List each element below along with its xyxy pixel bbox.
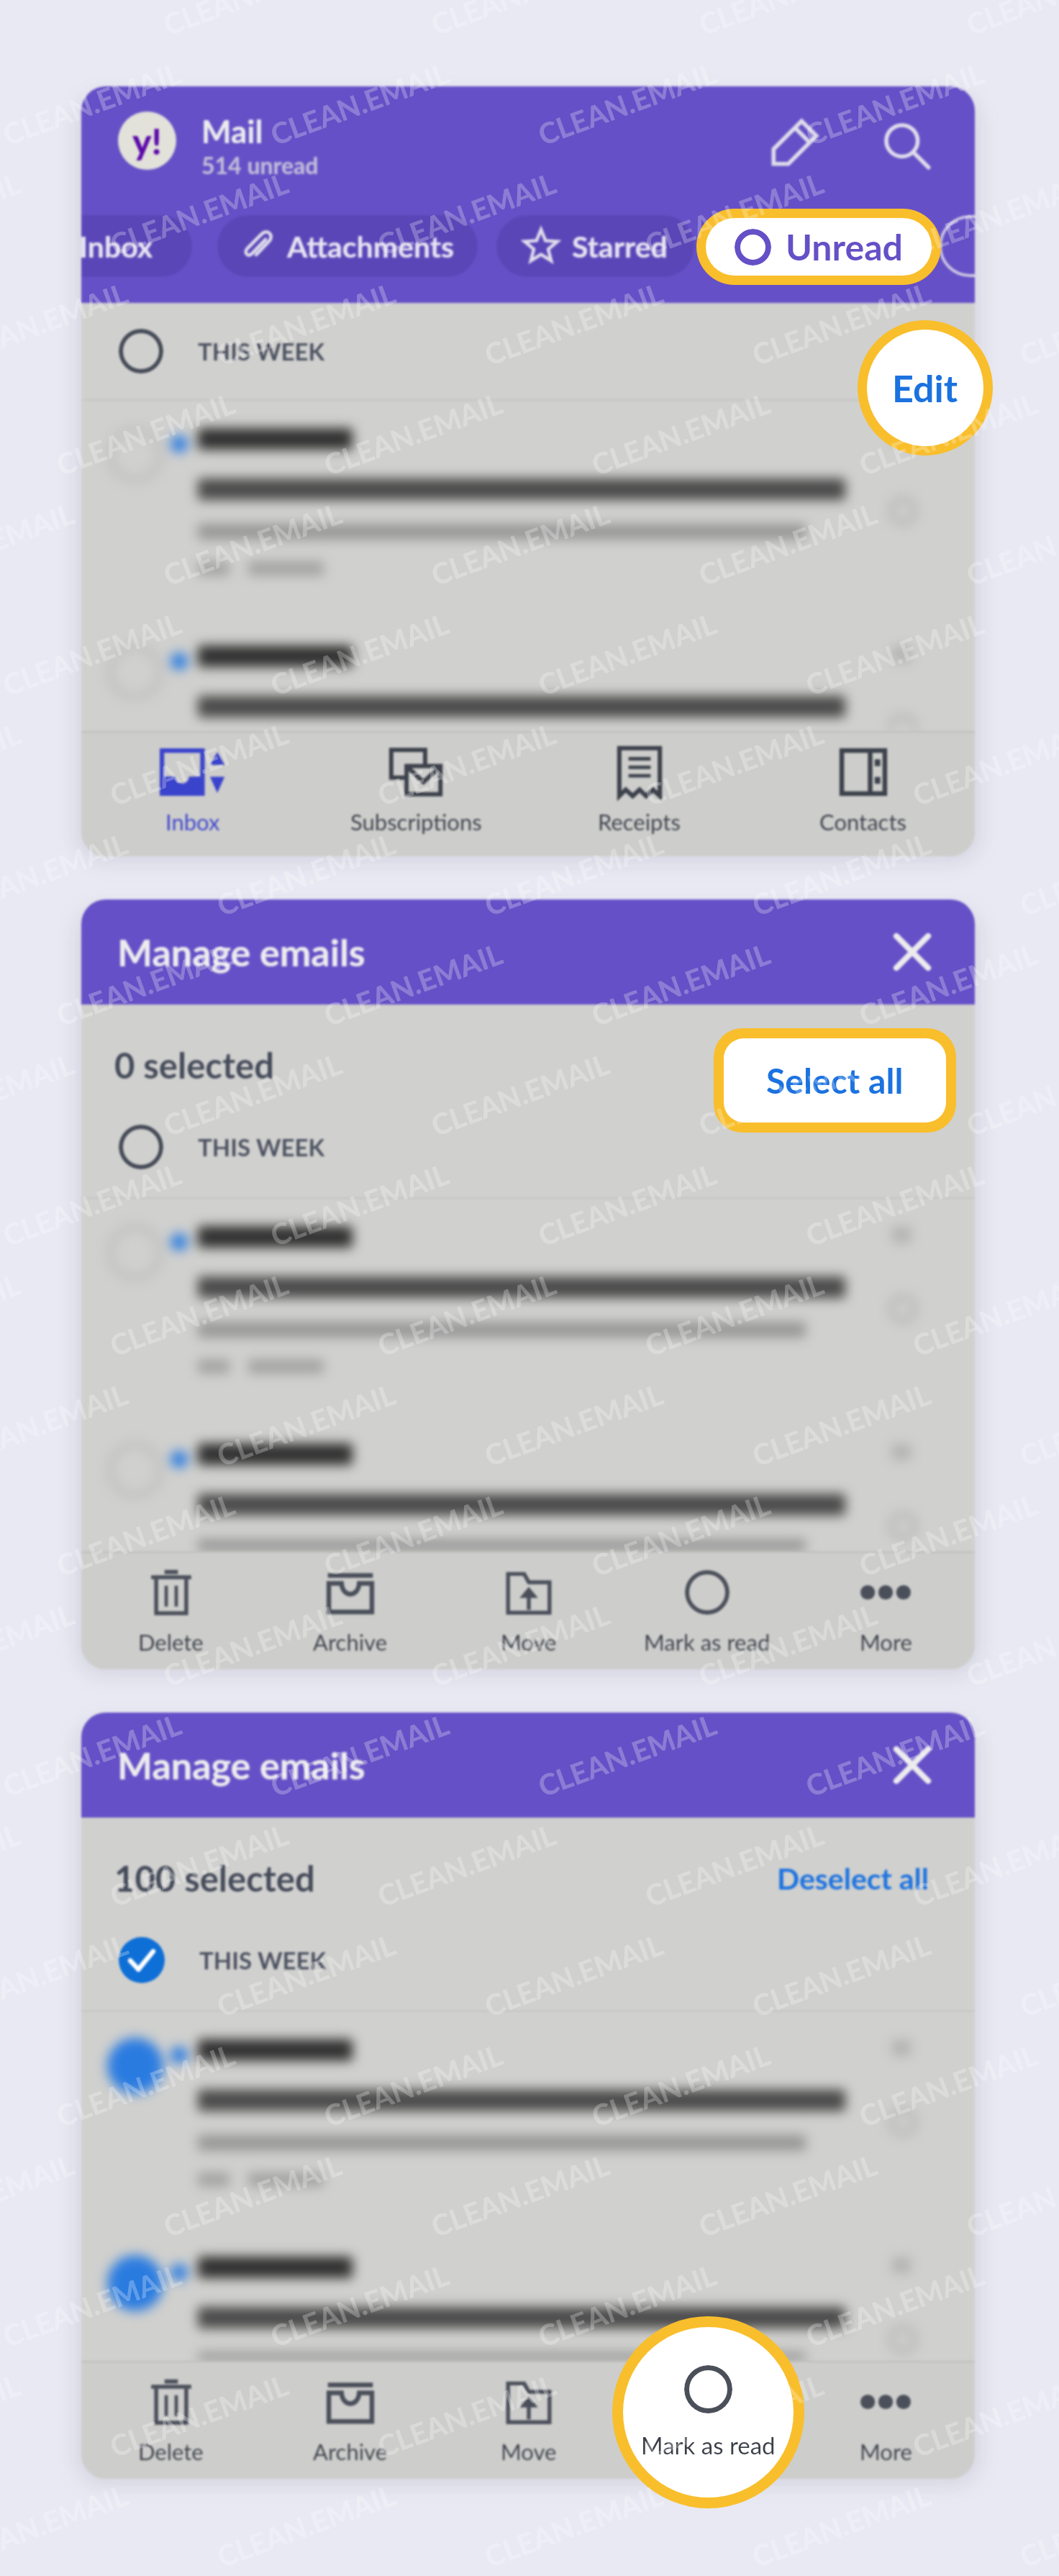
button[interactable]: Delete	[81, 2377, 260, 2464]
staticText: Attachments	[287, 229, 455, 264]
button[interactable]: Inbox	[81, 745, 304, 835]
staticText: Mail	[201, 112, 263, 150]
button[interactable]: Inbox	[81, 215, 192, 277]
staticText: THIS WEEK	[198, 337, 325, 366]
button[interactable]: Archive	[260, 1568, 440, 1655]
staticText: Delete	[138, 1628, 204, 1655]
button[interactable]: Move	[440, 1568, 618, 1655]
button[interactable]: Select all	[724, 1038, 946, 1123]
button[interactable]: Unread	[706, 218, 932, 276]
button[interactable]: Receipts	[527, 745, 751, 835]
staticText: THIS WEEK	[198, 1133, 325, 1161]
staticText: 0 selected	[114, 1044, 274, 1087]
button[interactable]: Subscriptions	[304, 745, 527, 835]
button[interactable]: Mark as read	[618, 2377, 796, 2464]
staticText: THIS WEEK	[199, 1946, 327, 1974]
button[interactable]: Archive	[260, 2377, 440, 2464]
staticText: Inbox	[81, 229, 153, 264]
button[interactable]: Replied	[939, 215, 975, 277]
staticText: Move	[501, 2438, 557, 2464]
staticText: Unread	[786, 225, 903, 268]
staticText: Contacts	[819, 808, 906, 835]
button[interactable]: Mark as read	[623, 2327, 794, 2498]
button[interactable]: Mark as read	[618, 1568, 796, 1655]
button[interactable]: Deselect all	[773, 1856, 933, 1900]
staticText: Mark as read	[644, 1628, 771, 1655]
staticText: Manage emails	[117, 1743, 365, 1787]
staticText: y!	[132, 119, 162, 163]
staticText: Receipts	[598, 808, 681, 835]
staticText: Archive	[313, 2438, 388, 2464]
staticText: Edit	[892, 366, 958, 410]
staticText: Manage emails	[117, 930, 365, 974]
button[interactable]: Starred	[496, 215, 694, 277]
button[interactable]: Contacts	[751, 745, 975, 835]
staticText: Inbox	[165, 808, 220, 835]
button[interactable]: Move	[440, 2377, 618, 2464]
button[interactable]: Edit	[867, 330, 983, 446]
staticText: Mark as read	[641, 2431, 776, 2459]
staticText: Deselect all	[777, 1861, 929, 1896]
button[interactable]: Delete	[81, 1568, 260, 1655]
button[interactable]: More	[796, 1568, 975, 1655]
button[interactable]: Close	[886, 925, 939, 979]
staticText: Select all	[766, 1060, 904, 1102]
staticText: Delete	[138, 2438, 204, 2464]
staticText: Mark as read	[644, 2438, 771, 2464]
button[interactable]: Close	[886, 1738, 939, 1792]
staticText: 514 unread	[201, 151, 319, 178]
staticText: Archive	[313, 1628, 388, 1655]
staticText: Move	[501, 1628, 557, 1655]
staticText: More	[860, 1628, 912, 1655]
button[interactable]: Search	[876, 115, 938, 177]
staticText: Subscriptions	[350, 808, 482, 835]
staticText: More	[860, 2438, 912, 2464]
button[interactable]: More	[796, 2377, 975, 2464]
button[interactable]: Attachments	[217, 215, 478, 277]
staticText: 100 selected	[114, 1857, 315, 1900]
staticText: Starred	[572, 229, 668, 264]
button[interactable]: Compose	[764, 112, 826, 173]
